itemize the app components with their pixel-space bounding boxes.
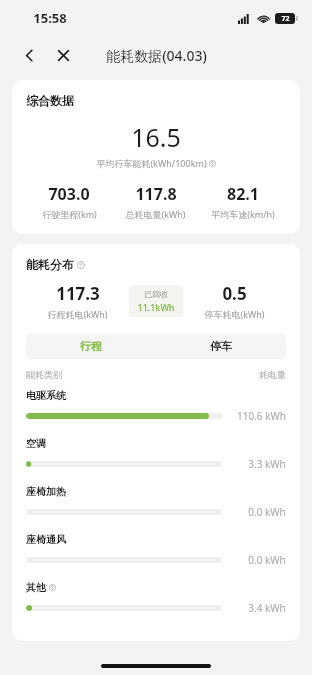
staticText: 耗电量 <box>259 369 286 380</box>
button[interactable]: Close <box>48 40 78 70</box>
staticText: 停车耗电(kWh) <box>204 308 265 320</box>
staticText: 能耗数据(04.03) <box>106 46 207 65</box>
staticText: 行程耗电(kWh) <box>47 308 108 320</box>
staticText: 0.0 kWh <box>248 505 286 519</box>
staticText: 能耗分布 <box>26 257 74 272</box>
staticText: 能耗类别 <box>26 369 62 380</box>
button[interactable]: 行程 <box>26 333 156 359</box>
staticText: 行驶里程(km) <box>42 208 97 220</box>
staticText: 0.0 kWh <box>248 553 286 567</box>
staticText: 平均车速(km/h) <box>211 208 275 220</box>
staticText: 行程 <box>80 339 102 353</box>
staticText: 平均行车能耗(kWh/100km) <box>96 157 207 169</box>
staticText: 703.0 <box>48 183 90 205</box>
staticText: 其他 <box>26 581 46 594</box>
staticText: 空调 <box>26 437 46 450</box>
staticText: 82.1 <box>227 183 259 205</box>
staticText: 已回收 <box>144 289 168 299</box>
staticText: 3.4 kWh <box>248 601 286 615</box>
staticText: 电驱系统 <box>26 389 66 402</box>
staticText: 15:58 <box>33 9 67 27</box>
staticText: 3.3 kWh <box>248 457 286 471</box>
staticText: 117.8 <box>135 183 177 205</box>
staticText: 停车 <box>210 339 232 353</box>
button[interactable]: 停车 <box>156 333 286 359</box>
button[interactable]: Back <box>14 40 44 70</box>
staticText: 综合数据 <box>26 93 74 108</box>
staticText: 117.3 <box>56 282 100 305</box>
staticText: 座椅加热 <box>26 485 66 498</box>
staticText: 座椅通风 <box>26 533 66 546</box>
staticText: 110.6 kWh <box>237 409 286 423</box>
staticText: 11.1kWh <box>137 301 175 313</box>
staticText: 16.5 <box>131 120 181 154</box>
staticText: 0.5 <box>222 282 247 305</box>
staticText: 72 <box>281 14 290 24</box>
staticText: 总耗电量(kWh) <box>125 208 186 220</box>
